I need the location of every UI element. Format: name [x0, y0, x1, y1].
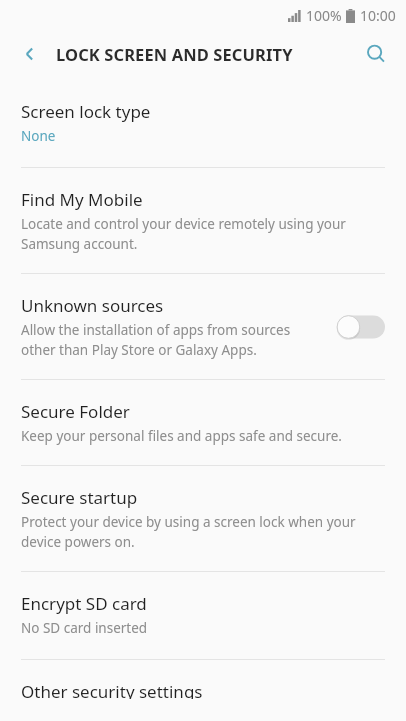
staticText: Secure Folder — [21, 400, 130, 423]
staticText: Find My Mobile — [21, 188, 143, 211]
button[interactable]: Search — [354, 32, 398, 76]
staticText: Screen lock type — [21, 100, 151, 123]
button[interactable]: Screen lock type — [0, 78, 406, 167]
staticText: Allow the installation of apps from sour… — [21, 321, 323, 359]
staticText: Secure startup — [21, 486, 138, 509]
button[interactable]: Unknown sources toggle, off — [337, 314, 385, 340]
staticText: Locate and control your device remotely … — [21, 215, 385, 253]
staticText: 100% — [306, 6, 342, 25]
staticText: Other security settings — [21, 680, 203, 699]
staticText: Protect your device by using a screen lo… — [21, 513, 385, 551]
staticText: LOCK SCREEN AND SECURITY — [56, 43, 293, 65]
staticText: No SD card inserted — [21, 619, 148, 637]
button[interactable]: Secure startup — [0, 466, 406, 571]
button[interactable]: Secure Folder — [0, 380, 406, 465]
staticText: Unknown sources — [21, 294, 164, 317]
button[interactable]: Encrypt SD card — [0, 572, 406, 659]
staticText: 10:00 — [360, 6, 396, 25]
button[interactable]: Unknown sources — [0, 274, 406, 379]
staticText: Keep your personal files and apps safe a… — [21, 427, 342, 445]
button[interactable]: Find My Mobile — [0, 168, 406, 273]
staticText: None — [21, 127, 56, 145]
button[interactable]: Back — [8, 32, 52, 76]
button[interactable]: Other security settings — [0, 660, 406, 721]
staticText: Encrypt SD card — [21, 592, 147, 615]
